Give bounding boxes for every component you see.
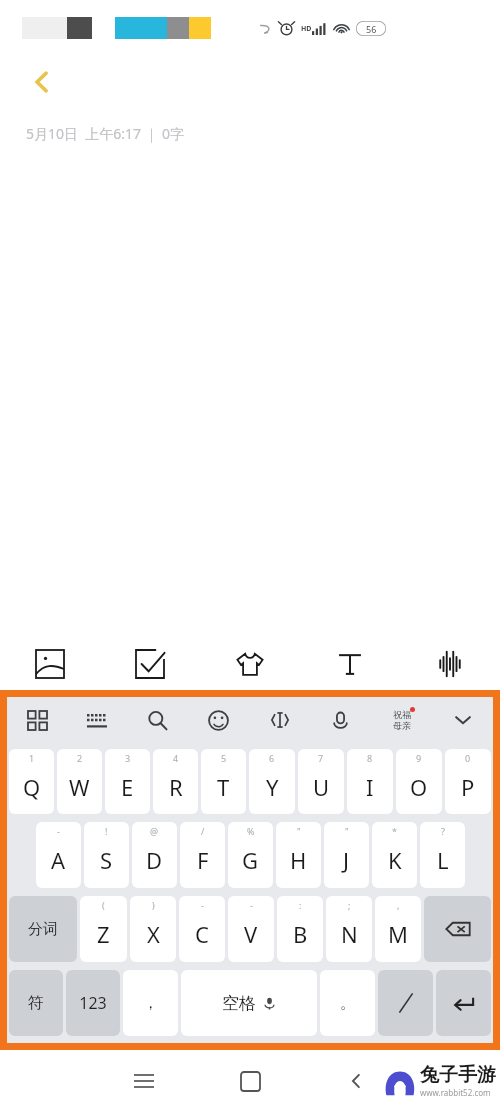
staticText: X [147,919,160,949]
button[interactable]: % [228,822,273,888]
staticText: D [146,845,163,875]
button[interactable]: Enter [436,970,491,1036]
staticText: 9 [416,752,422,764]
staticText: " [345,825,349,837]
staticText: www.rabbit52.com [420,1087,491,1098]
staticText: 3 [125,752,131,764]
staticText: S [100,845,113,875]
button[interactable]: Checklist [100,638,200,690]
button[interactable]: Text format [300,638,400,690]
button[interactable]: - [228,896,274,962]
staticText: % [247,825,255,837]
staticText: - [201,899,204,911]
button[interactable]: Switch language [378,970,433,1036]
button[interactable]: Recents [122,1059,166,1103]
staticText: : [299,899,302,911]
button[interactable]: 5 [201,749,246,814]
staticText: 5 [221,752,227,764]
staticText: T [217,772,230,802]
button[interactable]: * [372,822,417,888]
staticText: W [69,772,90,802]
button[interactable]: ! [84,822,129,888]
button[interactable]: 2 [57,749,102,814]
button[interactable]: ) [130,896,176,962]
staticText: O [410,772,428,802]
button[interactable]: 空格 [181,970,317,1036]
staticText: 56 [366,23,377,35]
button[interactable]: Hide keyboard [432,697,493,743]
button[interactable]: Apps [7,697,67,743]
staticText: ; [348,899,351,911]
staticText: 123 [79,992,107,1014]
button[interactable]: Cursor [249,697,310,743]
button[interactable]: 9 [396,749,442,814]
button[interactable]: 8 [347,749,393,814]
button[interactable]: ， [123,970,178,1036]
button[interactable]: Keyboard layout [67,697,127,743]
button[interactable]: 6 [249,749,295,814]
button[interactable]: @ [132,822,177,888]
staticText: Y [266,772,279,802]
button[interactable]: Emoji [188,697,249,743]
staticText: N [341,919,358,949]
staticText: G [242,845,259,875]
staticText: - [250,899,253,911]
staticText: 母亲 [393,720,411,731]
button[interactable]: 。 [320,970,375,1036]
button[interactable]: Search [127,697,188,743]
button[interactable]: Home [228,1059,272,1103]
button[interactable]: - [179,896,225,962]
staticText: B [293,919,308,949]
staticText: 4 [173,752,179,764]
button[interactable]: 符 [9,970,63,1036]
button[interactable]: " [276,822,321,888]
button[interactable]: - [36,822,81,888]
staticText: ( [102,899,105,911]
staticText: E [121,772,134,802]
button[interactable]: / [180,822,225,888]
staticText: U [313,772,330,802]
staticText: 分词 [28,920,58,939]
staticText: / [201,825,205,837]
button[interactable]: ? [420,822,465,888]
staticText: 5月10日 上午6:17 ｜ 0字 [26,124,185,143]
staticText: 1 [29,752,35,764]
button[interactable]: Voice input [310,697,371,743]
staticText: 空格 [222,993,256,1014]
staticText: K [388,845,402,875]
button[interactable]: Backspace [424,896,491,962]
button[interactable]: 0 [445,749,491,814]
button[interactable]: Voice [400,638,500,690]
button[interactable]: Insert image [0,638,100,690]
staticText: L [437,845,449,875]
staticText: ) [152,899,155,911]
staticText: A [51,845,66,875]
button[interactable]: 1 [9,749,54,814]
staticText: M [388,919,408,949]
button[interactable]: " [324,822,369,888]
staticText: 符 [28,993,44,1013]
staticText: H [290,845,307,875]
staticText: 兔子手游 [420,1063,496,1087]
button[interactable]: 4 [153,749,198,814]
button[interactable]: Back [18,58,66,106]
button[interactable]: 分词 [9,896,77,962]
staticText: F [197,845,209,875]
button[interactable]: Back [334,1059,378,1103]
staticText: * [392,825,397,837]
button[interactable]: Theme [371,697,432,743]
button[interactable]: : [277,896,323,962]
button[interactable]: ; [326,896,372,962]
staticText: R [169,772,183,802]
button[interactable]: , [375,896,421,962]
button[interactable]: Style [200,638,300,690]
staticText: ? [441,825,445,837]
button[interactable]: 123 [66,970,120,1036]
button[interactable]: 3 [105,749,150,814]
staticText: , [397,899,400,911]
button[interactable]: 7 [298,749,344,814]
staticText: 。 [340,994,355,1013]
staticText: 6 [269,752,275,764]
button[interactable]: ( [80,896,127,962]
staticText: @ [150,825,159,837]
